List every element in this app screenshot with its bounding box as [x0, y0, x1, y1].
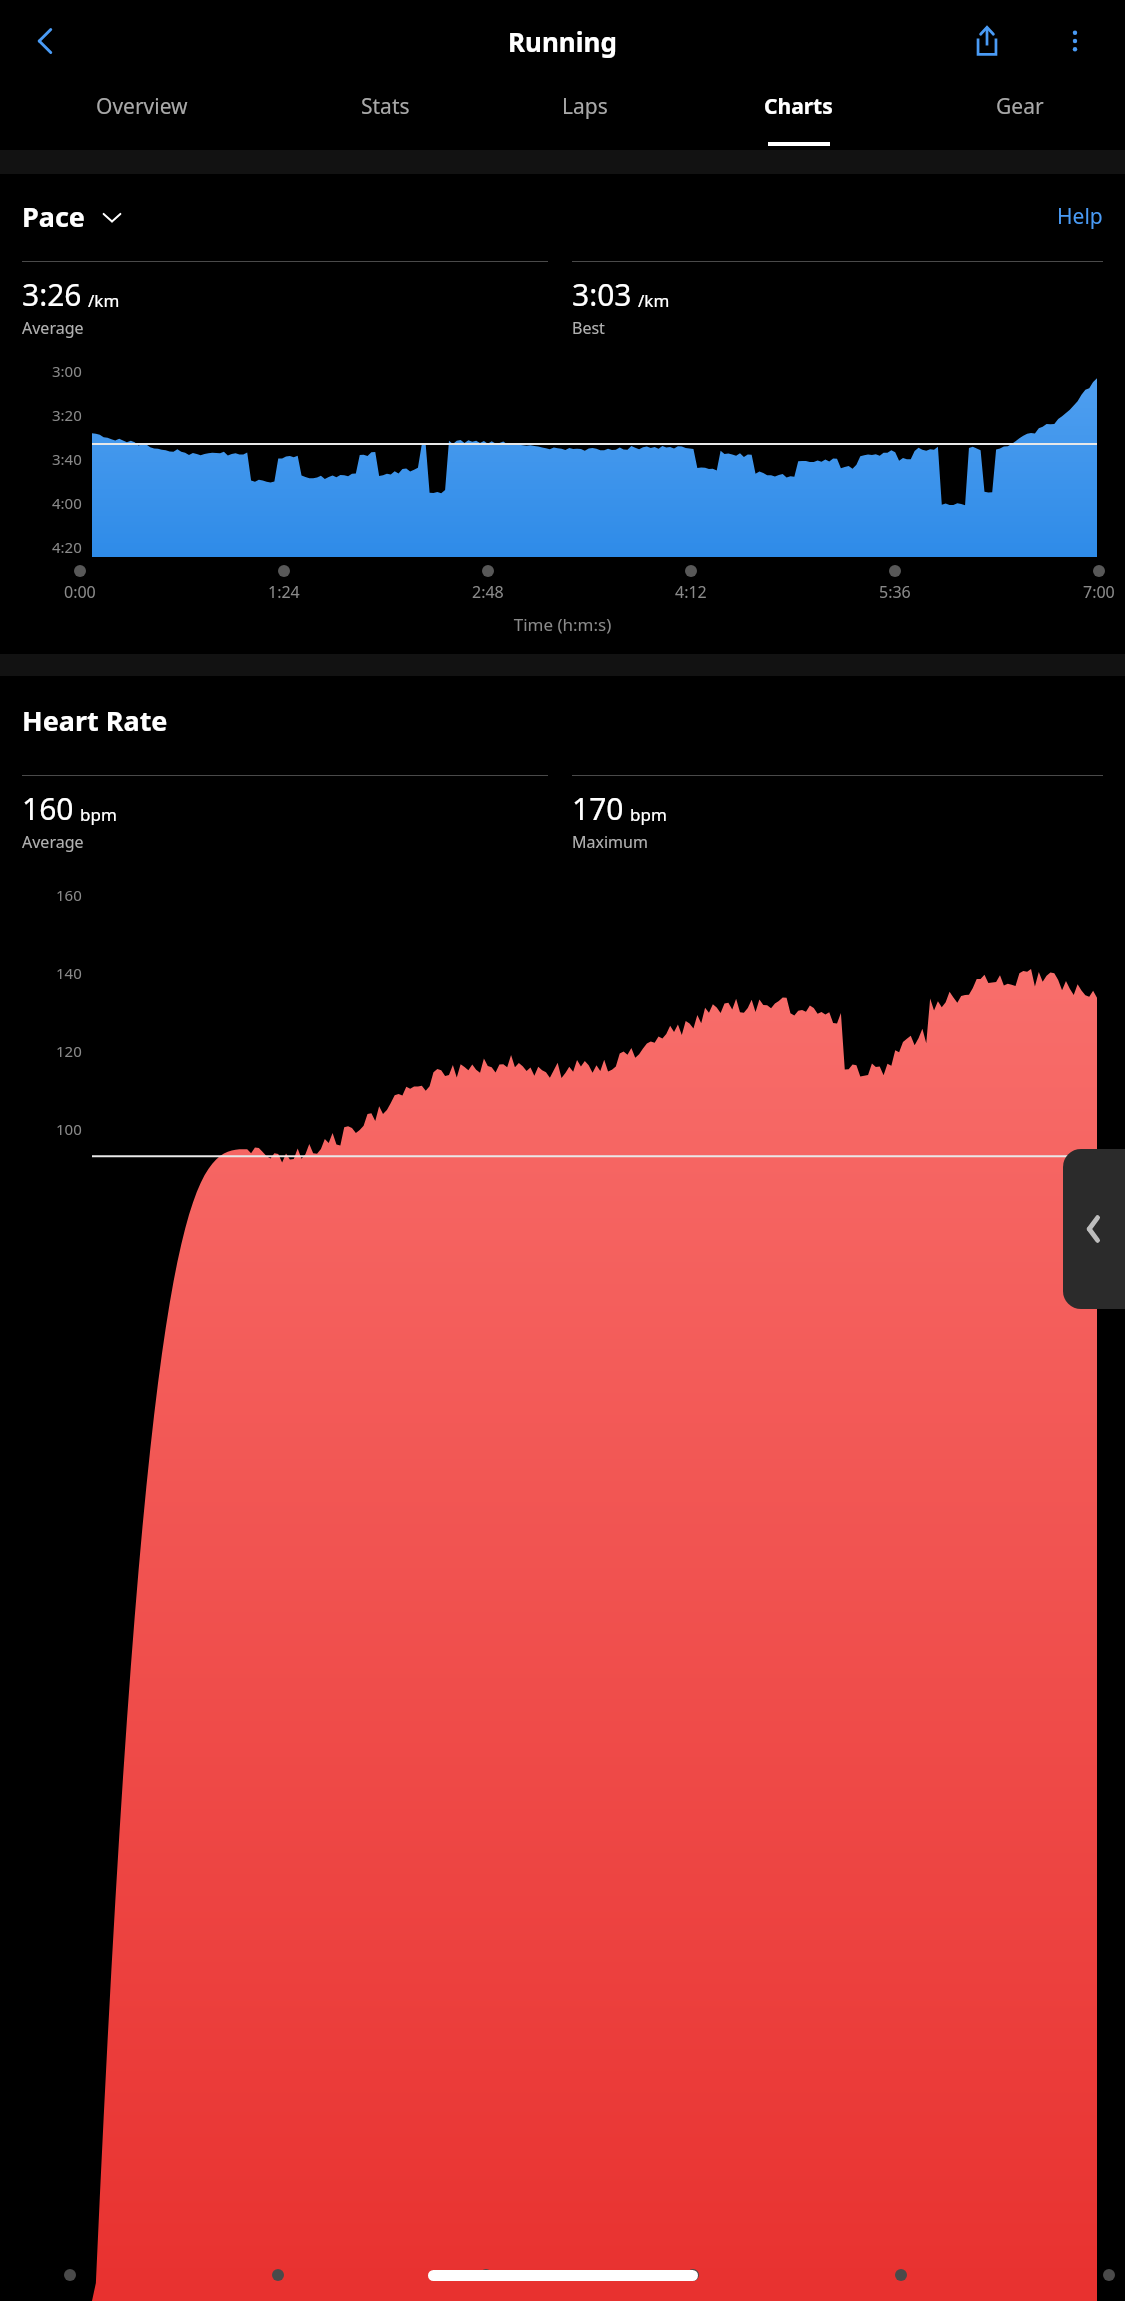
staticText: 7:00: [1083, 581, 1115, 603]
staticText: 160: [22, 788, 74, 829]
staticText: /km: [638, 289, 670, 312]
staticText: 0:00: [64, 581, 96, 603]
staticText: 4:12: [675, 581, 707, 603]
staticText: Time (h:m:s): [0, 613, 1125, 636]
button[interactable]: More options: [1047, 13, 1103, 69]
staticText: 160: [56, 885, 82, 905]
button[interactable]: Pace: [22, 198, 123, 235]
staticText: 3:20: [52, 405, 82, 425]
staticText: 4:00: [52, 493, 82, 513]
button[interactable]: Gear: [915, 82, 1125, 150]
staticText: 1:24: [268, 581, 300, 603]
staticText: Pace: [22, 198, 85, 235]
staticText: 3:40: [52, 449, 82, 469]
staticText: 3:03: [572, 274, 632, 315]
staticText: Laps: [562, 92, 608, 121]
staticText: Average: [22, 831, 84, 853]
staticText: Best: [572, 317, 605, 339]
button[interactable]: Help: [1057, 202, 1103, 231]
button[interactable]: Charts: [682, 82, 915, 150]
staticText: 120: [56, 1041, 82, 1061]
staticText: 100: [56, 1119, 82, 1139]
staticText: Overview: [96, 92, 188, 121]
staticText: bpm: [630, 803, 667, 826]
staticText: bpm: [80, 803, 117, 826]
button[interactable]: Open panel: [1063, 1149, 1125, 1309]
staticText: Maximum: [572, 831, 648, 853]
staticText: 2:48: [472, 581, 504, 603]
staticText: Running: [508, 24, 617, 59]
staticText: 140: [56, 963, 82, 983]
button[interactable]: Stats: [283, 82, 487, 150]
staticText: 3:00: [52, 361, 82, 381]
button[interactable]: Share: [959, 13, 1015, 69]
staticText: Average: [22, 317, 84, 339]
staticText: 4:20: [52, 537, 82, 557]
button[interactable]: Laps: [487, 82, 682, 150]
button[interactable]: Overview: [0, 82, 283, 150]
button[interactable]: Back: [18, 13, 74, 69]
staticText: Heart Rate: [22, 702, 168, 739]
staticText: Stats: [361, 92, 410, 121]
staticText: Gear: [996, 92, 1044, 121]
staticText: Help: [1057, 202, 1103, 231]
staticText: 3:26: [22, 274, 82, 315]
staticText: Charts: [764, 92, 833, 121]
staticText: 5:36: [879, 581, 911, 603]
staticText: /km: [88, 289, 120, 312]
staticText: 170: [572, 788, 624, 829]
